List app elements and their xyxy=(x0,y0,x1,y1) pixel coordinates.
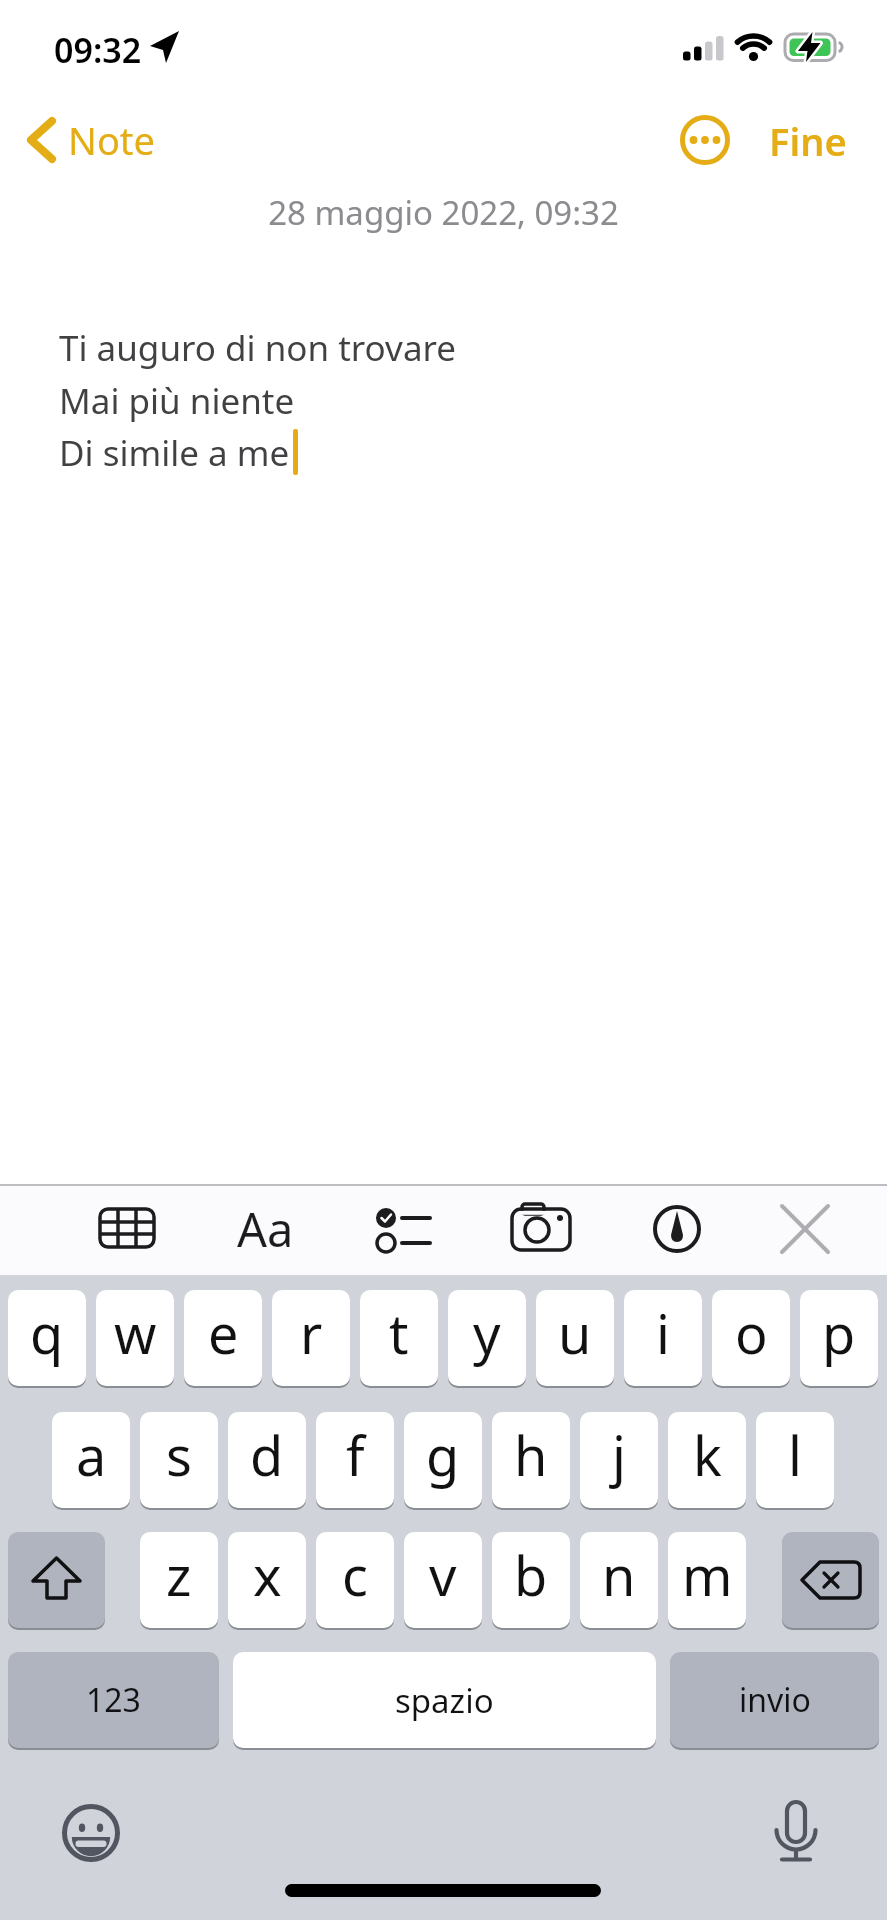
button[interactable]: i xyxy=(624,1290,702,1386)
button[interactable]: l xyxy=(756,1412,834,1508)
button[interactable]: n xyxy=(580,1532,658,1628)
staticText: y xyxy=(473,1296,501,1370)
button[interactable]: Fine xyxy=(758,114,858,168)
staticText: c xyxy=(342,1538,368,1612)
staticText: i xyxy=(656,1296,670,1370)
staticText: g xyxy=(426,1418,460,1492)
staticText: invio xyxy=(739,1678,811,1722)
button[interactable]: b xyxy=(492,1532,570,1628)
staticText: b xyxy=(514,1538,548,1612)
staticText: Ti auguro di non trovare Mai più niente … xyxy=(59,324,457,476)
button[interactable]: t xyxy=(360,1290,438,1386)
staticText: u xyxy=(558,1296,592,1370)
button[interactable]: h xyxy=(492,1412,570,1508)
staticText: r xyxy=(300,1296,323,1370)
button[interactable]: w xyxy=(96,1290,174,1386)
button[interactable] xyxy=(60,1802,124,1866)
staticText: l xyxy=(788,1418,802,1492)
button[interactable]: y xyxy=(448,1290,526,1386)
button[interactable]: v xyxy=(404,1532,482,1628)
staticText: k xyxy=(693,1418,722,1492)
button[interactable]: Aa xyxy=(228,1196,302,1262)
button[interactable]: d xyxy=(228,1412,306,1508)
button[interactable]: 123 xyxy=(8,1652,219,1748)
staticText: v xyxy=(429,1538,457,1612)
button[interactable]: u xyxy=(536,1290,614,1386)
staticText: e xyxy=(208,1296,239,1370)
staticText: s xyxy=(166,1418,192,1492)
staticText: w xyxy=(114,1296,157,1370)
button[interactable]: o xyxy=(712,1290,790,1386)
staticText: 09:32 xyxy=(54,27,142,73)
staticText: Fine xyxy=(769,115,847,167)
button[interactable]: c xyxy=(316,1532,394,1628)
button[interactable]: m xyxy=(668,1532,746,1628)
button[interactable] xyxy=(368,1200,436,1258)
button[interactable]: x xyxy=(228,1532,306,1628)
button[interactable]: p xyxy=(800,1290,878,1386)
button[interactable] xyxy=(782,1532,879,1628)
button[interactable]: invio xyxy=(670,1652,879,1748)
staticText: d xyxy=(250,1418,284,1492)
button[interactable]: a xyxy=(52,1412,130,1508)
button[interactable] xyxy=(95,1202,159,1256)
button[interactable]: k xyxy=(668,1412,746,1508)
button[interactable] xyxy=(652,1202,704,1256)
button[interactable] xyxy=(506,1200,576,1258)
button[interactable]: z xyxy=(140,1532,218,1628)
staticText: Note xyxy=(68,114,156,166)
staticText: n xyxy=(602,1538,636,1612)
button[interactable]: e xyxy=(184,1290,262,1386)
staticText: 28 maggio 2022, 09:32 xyxy=(268,190,619,235)
button[interactable] xyxy=(770,1795,822,1867)
staticText: z xyxy=(166,1538,192,1612)
button[interactable] xyxy=(778,1202,832,1256)
button[interactable]: r xyxy=(272,1290,350,1386)
button[interactable]: s xyxy=(140,1412,218,1508)
staticText: p xyxy=(822,1296,856,1370)
staticText: j xyxy=(612,1418,626,1492)
button[interactable]: q xyxy=(8,1290,86,1386)
staticText: spazio xyxy=(395,1678,494,1723)
button[interactable]: Note xyxy=(22,112,156,168)
staticText: f xyxy=(346,1418,365,1492)
staticText: t xyxy=(389,1296,409,1370)
staticText: h xyxy=(514,1418,548,1492)
button[interactable]: f xyxy=(316,1412,394,1508)
staticText: a xyxy=(76,1418,107,1492)
staticText: m xyxy=(682,1538,733,1612)
button[interactable] xyxy=(679,114,731,166)
staticText: o xyxy=(735,1296,768,1370)
staticText: 123 xyxy=(86,1678,141,1722)
staticText: x xyxy=(253,1538,282,1612)
staticText: q xyxy=(30,1296,64,1370)
button[interactable]: g xyxy=(404,1412,482,1508)
button[interactable] xyxy=(8,1532,105,1628)
button[interactable]: j xyxy=(580,1412,658,1508)
button[interactable]: spazio xyxy=(233,1652,656,1748)
staticText: Aa xyxy=(237,1197,294,1261)
